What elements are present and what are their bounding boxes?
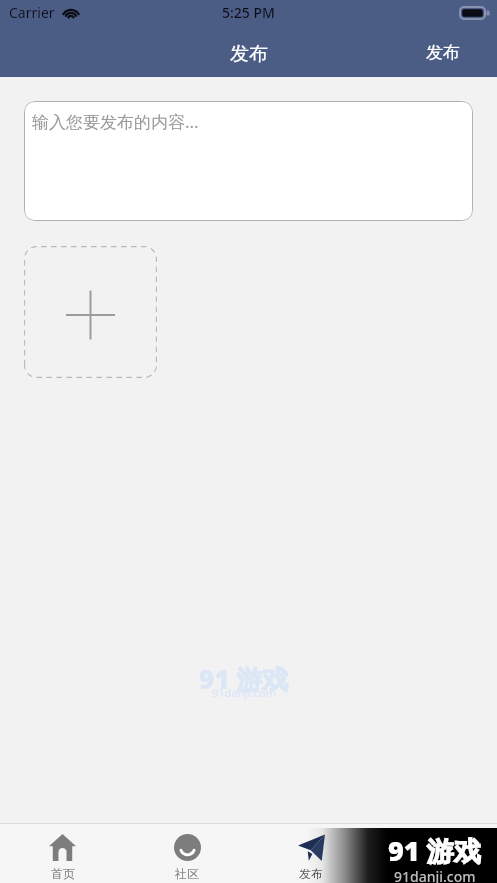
button[interactable]: 发布 <box>249 834 373 881</box>
staticText: 91danji.com <box>394 867 476 883</box>
staticText: 社区 <box>175 866 199 881</box>
button[interactable]: 输入您要发布的内容... <box>24 101 473 221</box>
staticText: 5:25 PM <box>222 3 275 22</box>
staticText: 91danji.com <box>212 685 277 700</box>
staticText: 输入您要发布的内容... <box>32 110 199 133</box>
staticText: 发布 <box>299 866 323 881</box>
button[interactable]: 社区 <box>125 834 249 881</box>
button[interactable]: 我的 <box>373 834 497 881</box>
staticText: Carrier <box>9 3 55 22</box>
button[interactable]: Add image <box>24 246 157 378</box>
button[interactable]: 首页 <box>0 834 125 881</box>
staticText: 我的 <box>423 866 447 881</box>
staticText: 91 游戏 <box>388 832 481 869</box>
button[interactable]: 发布 <box>410 31 497 77</box>
staticText: 首页 <box>51 866 75 881</box>
staticText: 发布 <box>426 42 460 63</box>
staticText: 91 游戏 <box>199 661 289 697</box>
staticText: 发布 <box>230 42 268 66</box>
